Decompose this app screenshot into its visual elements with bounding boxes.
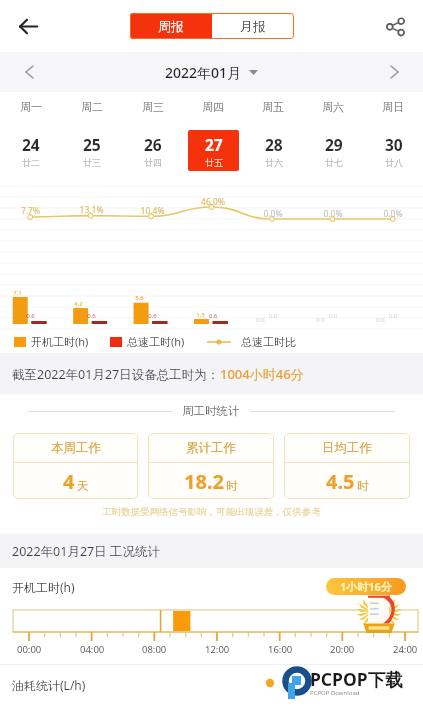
- staticText: 4.2: [61, 300, 96, 308]
- button[interactable]: 29: [308, 130, 359, 171]
- staticText: 时: [357, 479, 369, 493]
- staticText: 廿四: [144, 157, 162, 168]
- staticText: 周日: [382, 100, 404, 114]
- staticText: 4.5: [326, 468, 355, 495]
- staticText: 7.7%: [0, 205, 61, 217]
- staticText: 0.6: [0, 312, 61, 320]
- staticText: 0.0%: [363, 208, 423, 220]
- staticText: 18.2: [184, 468, 224, 495]
- staticText: 本周工作: [51, 440, 101, 456]
- staticText: 10.4%: [122, 205, 183, 217]
- staticText: 0.0: [363, 316, 398, 324]
- staticText: 时: [226, 479, 238, 493]
- staticText: 12:00: [205, 643, 230, 656]
- staticText: 廿七: [325, 157, 343, 168]
- staticText: 27: [205, 134, 223, 155]
- staticText: 29: [325, 134, 343, 155]
- staticText: 开机工时(h): [31, 334, 89, 349]
- staticText: 30: [385, 134, 403, 155]
- staticText: 0.0: [303, 316, 338, 324]
- staticText: 廿六: [265, 157, 283, 168]
- staticText: 月报: [240, 18, 266, 34]
- staticText: 周工时统计: [182, 404, 240, 418]
- staticText: 截至2022年01月27日设备总工时为：: [12, 366, 220, 383]
- button[interactable]: 30: [368, 130, 419, 171]
- staticText: 周四: [202, 100, 224, 114]
- staticText: 00:00: [17, 643, 42, 656]
- staticText: 总速工时比: [241, 335, 296, 349]
- button[interactable]: 周报: [130, 13, 212, 39]
- button[interactable]: 2022年01月: [165, 63, 258, 82]
- button[interactable]: 25: [66, 130, 117, 171]
- staticText: 廿三: [83, 157, 101, 168]
- staticText: 24: [22, 134, 40, 155]
- button[interactable]: Back: [8, 6, 48, 46]
- staticText: 周报: [158, 18, 184, 34]
- staticText: 16:00: [268, 643, 293, 656]
- staticText: 周一: [20, 100, 42, 114]
- staticText: 累计工作: [186, 440, 236, 456]
- staticText: 26: [144, 134, 162, 155]
- button[interactable]: 24: [5, 130, 56, 171]
- button[interactable]: Next month: [379, 57, 409, 87]
- staticText: 油耗统计(L/h): [12, 677, 86, 693]
- staticText: 0.0: [243, 312, 303, 320]
- staticText: PCPOP Download: [310, 689, 360, 697]
- staticText: 工时数据受网络信号影响，可能出现误差，仅供参考: [0, 506, 423, 518]
- staticText: 0.0%: [303, 208, 363, 220]
- staticText: 1小时16分: [340, 579, 392, 594]
- staticText: 46.0%: [183, 196, 243, 208]
- staticText: 廿二: [22, 157, 40, 168]
- staticText: 4: [63, 468, 75, 495]
- staticText: 0.0: [243, 316, 278, 324]
- button[interactable]: 日均工作: [284, 433, 410, 499]
- staticText: 2022年01月27日 工况统计: [12, 543, 160, 560]
- staticText: 周三: [142, 100, 164, 114]
- staticText: 04:00: [80, 643, 105, 656]
- staticText: 开机工时(h): [12, 579, 75, 595]
- staticText: 25: [83, 134, 101, 155]
- staticText: 0.0: [363, 312, 423, 320]
- button[interactable]: 28: [248, 130, 299, 171]
- staticText: 20:00: [330, 643, 355, 656]
- staticText: 24:00: [393, 643, 418, 656]
- staticText: 廿八: [385, 157, 403, 168]
- staticText: 08:00: [142, 643, 167, 656]
- staticText: 7.1: [0, 289, 35, 297]
- button[interactable]: 1小时16分: [326, 578, 406, 595]
- staticText: 0.0: [303, 312, 363, 320]
- staticText: 28: [265, 134, 283, 155]
- button[interactable]: 累计工作: [148, 433, 274, 499]
- staticText: 0.6: [122, 312, 183, 320]
- button[interactable]: Previous month: [14, 57, 44, 87]
- staticText: 5.6: [122, 294, 157, 302]
- staticText: 周六: [322, 100, 344, 114]
- staticText: 0.6: [61, 312, 122, 320]
- staticText: 廿五: [205, 157, 223, 168]
- staticText: PCPOP下载: [310, 667, 403, 691]
- staticText: 1004小时46分: [220, 365, 304, 383]
- staticText: 日均工作: [322, 440, 372, 456]
- staticText: 13.1%: [61, 204, 122, 216]
- staticText: 1.3: [183, 311, 218, 319]
- staticText: 0.6: [183, 312, 243, 320]
- staticText: 周五: [262, 100, 284, 114]
- staticText: 总速工时(h): [127, 334, 185, 349]
- button[interactable]: 月报: [212, 13, 294, 39]
- staticText: 天: [77, 479, 89, 493]
- staticText: 2022年01月: [165, 63, 242, 82]
- staticText: 周二: [81, 100, 103, 114]
- button[interactable]: 27: [188, 130, 239, 171]
- staticText: 0.0%: [243, 208, 303, 220]
- button[interactable]: 本周工作: [13, 433, 138, 499]
- button[interactable]: 26: [127, 130, 178, 171]
- button[interactable]: Share: [375, 6, 415, 46]
